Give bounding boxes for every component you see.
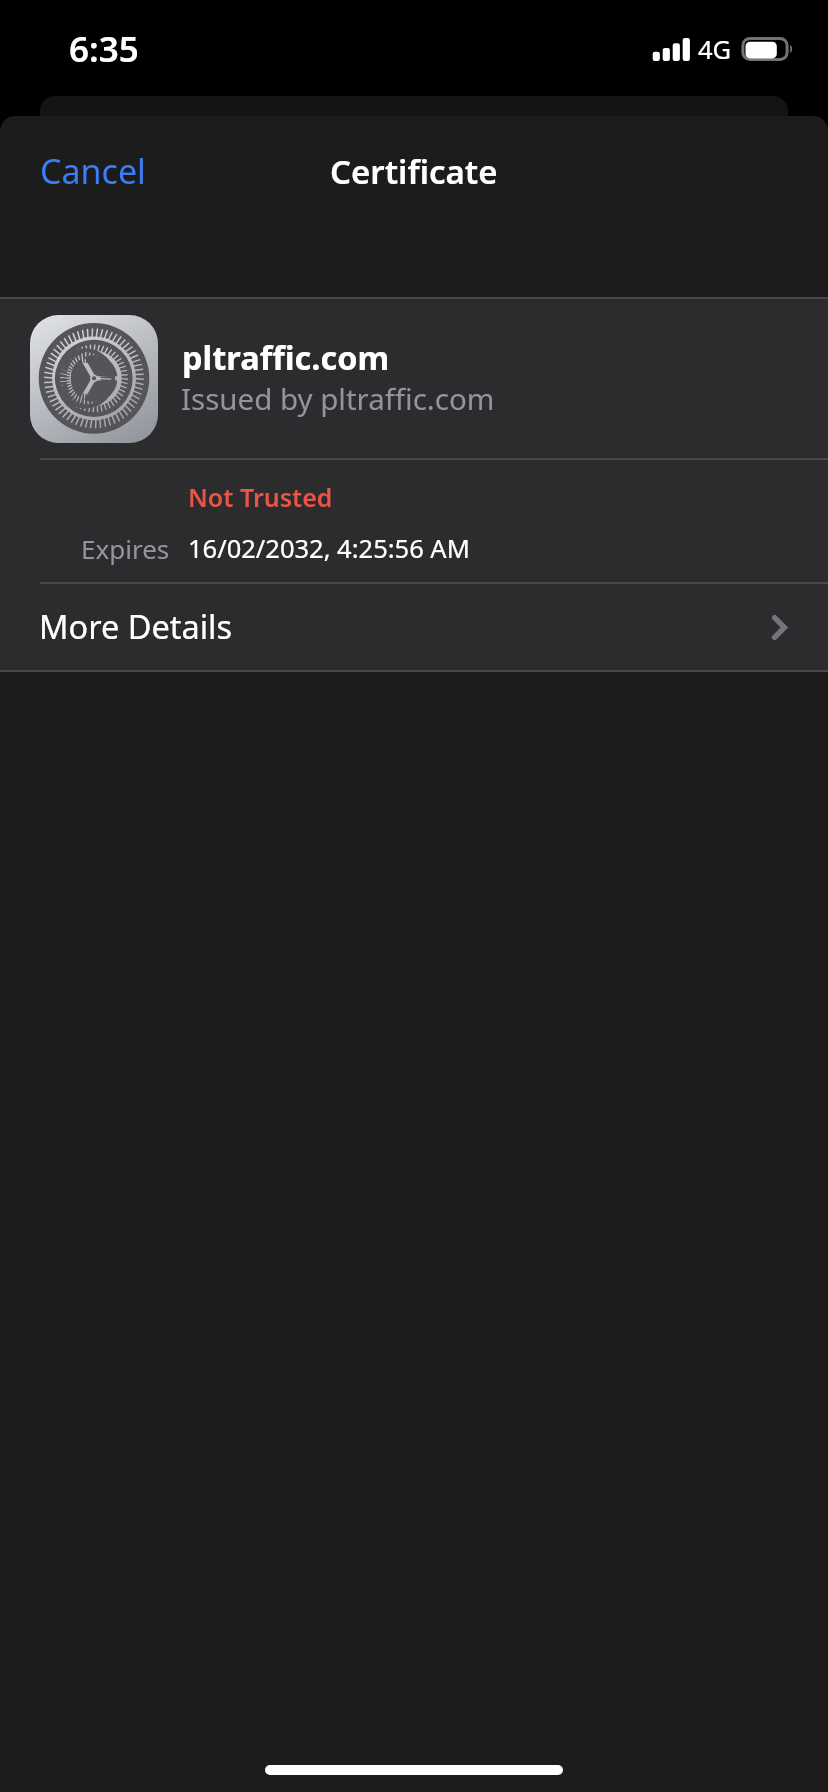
staticText: Issued by pltraffic.com <box>181 378 495 418</box>
button[interactable]: Cancel <box>40 148 146 194</box>
staticText: Expires <box>81 531 170 566</box>
button[interactable]: More Details <box>0 582 828 669</box>
staticText: More Details <box>39 604 233 648</box>
staticText: 6:35 <box>69 25 139 73</box>
staticText: Cancel <box>40 148 146 194</box>
staticText: 4G <box>698 32 732 67</box>
staticText: 16/02/2032, 4:25:56 AM <box>188 531 470 566</box>
staticText: Not Trusted <box>188 480 333 514</box>
staticText: Certificate <box>330 149 498 194</box>
staticText: pltraffic.com <box>182 335 390 379</box>
